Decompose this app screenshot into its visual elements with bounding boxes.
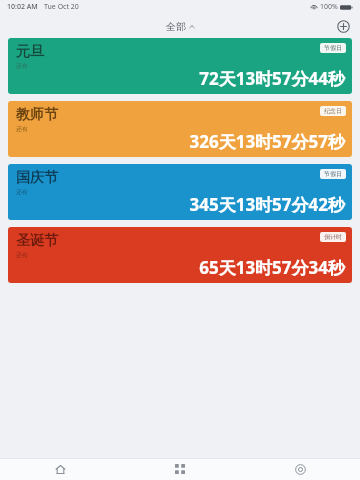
staticText: 教师节 [16, 106, 58, 124]
button[interactable]: 国庆节 [8, 164, 352, 220]
staticText: 倒计时 [324, 233, 342, 241]
staticText: 全部 [166, 20, 186, 33]
staticText: 元旦 [16, 43, 44, 61]
staticText: 纪念日 [324, 107, 342, 115]
button[interactable]: 圣诞节 [8, 227, 352, 283]
button[interactable]: Add countdown [332, 15, 354, 37]
button[interactable]: 元旦 [8, 38, 352, 94]
button[interactable]: 教师节 [8, 101, 352, 157]
button[interactable]: Settings [240, 458, 360, 480]
staticText: 10:02 AM [7, 2, 38, 12]
staticText: 65天13时57分34秒 [199, 256, 345, 279]
staticText: 还有 [16, 251, 28, 259]
button[interactable]: 全部 [160, 18, 201, 35]
staticText: 还有 [16, 125, 28, 133]
staticText: 还有 [16, 62, 28, 70]
staticText: 国庆节 [16, 169, 58, 187]
button[interactable]: Categories [120, 458, 240, 480]
staticText: 圣诞节 [16, 232, 58, 250]
button[interactable]: Home [0, 458, 120, 480]
staticText: 节假日 [324, 170, 342, 178]
staticText: 345天13时57分42秒 [189, 193, 345, 216]
staticText: 100% [320, 2, 338, 12]
staticText: 节假日 [324, 44, 342, 52]
staticText: 326天13时57分57秒 [189, 130, 345, 153]
staticText: 还有 [16, 188, 28, 196]
staticText: Tue Oct 20 [44, 2, 79, 12]
staticText: 72天13时57分44秒 [199, 67, 345, 90]
